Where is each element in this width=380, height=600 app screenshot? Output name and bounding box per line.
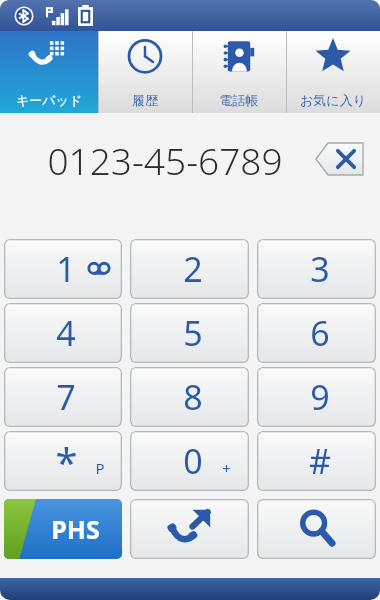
staticText: 8: [183, 374, 203, 420]
button[interactable]: 3: [257, 239, 376, 299]
button[interactable]: Search: [257, 499, 376, 559]
button[interactable]: 8: [130, 367, 249, 427]
staticText: 1: [56, 246, 76, 292]
button[interactable]: 4: [4, 303, 122, 363]
staticText: 0123-45-6789: [14, 135, 316, 185]
staticText: PHS: [51, 512, 100, 546]
staticText: キーパッド: [0, 92, 98, 108]
staticText: 電話帳: [192, 92, 286, 108]
staticText: 9: [310, 374, 330, 420]
button[interactable]: キーパッド: [0, 31, 98, 113]
button[interactable]: Delete: [316, 143, 366, 177]
button[interactable]: *: [4, 431, 122, 491]
button[interactable]: 5: [130, 303, 249, 363]
staticText: 2: [183, 246, 203, 292]
staticText: +: [222, 458, 231, 478]
staticText: P: [95, 458, 105, 478]
staticText: 5: [183, 310, 203, 356]
staticText: 0: [183, 438, 203, 484]
staticText: *: [55, 434, 78, 488]
staticText: 6: [310, 310, 330, 356]
staticText: 4: [56, 310, 76, 356]
staticText: #: [309, 438, 331, 484]
button[interactable]: 0: [130, 431, 249, 491]
button[interactable]: 電話帳: [192, 31, 286, 113]
button[interactable]: 9: [257, 367, 376, 427]
button[interactable]: 履歴: [98, 31, 192, 113]
staticText: お気に入り: [286, 92, 380, 108]
button[interactable]: Call: [130, 499, 249, 559]
button[interactable]: お気に入り: [286, 31, 380, 113]
button[interactable]: 1: [4, 239, 122, 299]
staticText: 履歴: [98, 92, 192, 108]
button[interactable]: #: [257, 431, 376, 491]
button[interactable]: 6: [257, 303, 376, 363]
staticText: 3: [310, 246, 330, 292]
button[interactable]: PHS: [4, 499, 122, 559]
button[interactable]: 2: [130, 239, 249, 299]
button[interactable]: 7: [4, 367, 122, 427]
staticText: 7: [56, 374, 76, 420]
